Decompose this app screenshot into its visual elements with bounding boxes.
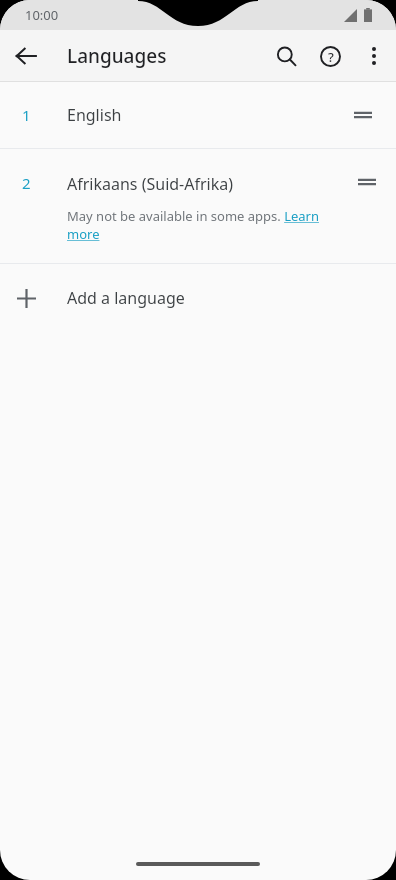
- button[interactable]: More options: [352, 34, 396, 78]
- staticText: English: [67, 104, 122, 126]
- staticText: 1: [22, 105, 31, 125]
- staticText: Afrikaans (Suid-Afrika): [67, 173, 234, 195]
- staticText: 10:00: [25, 6, 59, 24]
- button[interactable]: 1: [0, 82, 396, 148]
- button[interactable]: 2: [0, 149, 396, 263]
- staticText: Languages: [67, 43, 167, 69]
- button[interactable]: Search: [264, 34, 308, 78]
- staticText: 2: [22, 173, 31, 193]
- staticText: May not be available in some apps. Learn…: [67, 207, 329, 243]
- button[interactable]: Add a language: [0, 264, 396, 332]
- button[interactable]: Back: [6, 36, 46, 76]
- button[interactable]: Help: [308, 34, 352, 78]
- staticText: ?: [328, 48, 334, 66]
- staticText: Add a language: [67, 287, 185, 309]
